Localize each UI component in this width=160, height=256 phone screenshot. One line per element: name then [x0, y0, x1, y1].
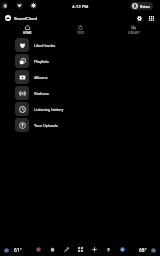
staticText: FEED [77, 31, 85, 35]
staticText: Brian [140, 4, 150, 9]
staticText: LIBRARY [128, 31, 140, 35]
button[interactable]: Phone [59, 243, 73, 256]
staticText: Your Uploads [34, 123, 58, 128]
staticText: HOME [23, 31, 32, 35]
button[interactable]: Wifi [16, 2, 23, 9]
button[interactable]: Add [87, 243, 101, 256]
staticText: Liked tracks [34, 43, 56, 48]
button[interactable]: LIBRARY [107, 24, 160, 36]
staticText: 61° [14, 247, 22, 253]
staticText: Stations [34, 91, 49, 96]
button[interactable]: Home [45, 243, 59, 256]
staticText: 4:13 PM [72, 4, 89, 9]
staticText: SoundCloud [14, 16, 37, 21]
staticText: Listening history [34, 107, 64, 112]
staticText: Albums [34, 75, 48, 80]
button[interactable]: Weather 61 degrees [4, 247, 22, 253]
button[interactable]: Notifications [101, 243, 115, 256]
button[interactable]: Liked tracks [0, 37, 160, 53]
button[interactable]: Listening history [0, 101, 160, 117]
button[interactable]: More apps [145, 12, 158, 25]
button[interactable]: Playlists [0, 53, 160, 69]
button[interactable]: Camera [31, 243, 45, 256]
button[interactable]: Settings [133, 12, 146, 25]
staticText: Playlists [34, 59, 49, 64]
button[interactable]: Weather 68 degrees [139, 247, 156, 253]
staticText: 68° [139, 247, 147, 253]
button[interactable]: Albums [0, 69, 160, 85]
button[interactable]: Browser [115, 243, 129, 256]
button[interactable]: Brightness [30, 2, 37, 9]
button[interactable]: Your Uploads [0, 117, 160, 133]
button[interactable]: Brian [130, 2, 153, 10]
button[interactable]: FEED [54, 24, 107, 36]
button[interactable]: Stations [0, 85, 160, 101]
button[interactable]: HOME [0, 24, 54, 36]
button[interactable]: Bluetooth [1, 2, 8, 9]
button[interactable]: Apps [73, 243, 87, 256]
